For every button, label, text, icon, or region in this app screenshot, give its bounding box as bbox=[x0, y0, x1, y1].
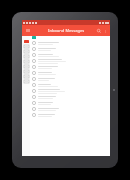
button[interactable]: Labels bbox=[22, 74, 30, 79]
staticText: Inbound Messages bbox=[48, 28, 85, 33]
button[interactable]: Spam bbox=[22, 64, 30, 69]
button[interactable] bbox=[30, 70, 110, 76]
button[interactable] bbox=[30, 94, 110, 100]
button[interactable] bbox=[30, 112, 110, 118]
button[interactable] bbox=[30, 64, 110, 70]
button[interactable]: Search bbox=[95, 27, 102, 34]
button[interactable]: Compose bbox=[32, 36, 36, 39]
button[interactable]: Starred bbox=[22, 44, 30, 49]
button[interactable] bbox=[30, 88, 110, 94]
button[interactable]: Trash bbox=[22, 69, 30, 74]
button[interactable] bbox=[30, 82, 110, 88]
button[interactable] bbox=[30, 46, 110, 52]
button[interactable]: Open navigation menu bbox=[24, 27, 31, 34]
button[interactable]: Settings bbox=[22, 79, 30, 84]
button[interactable]: Archive bbox=[22, 59, 30, 64]
button[interactable]: More options bbox=[102, 28, 108, 34]
button[interactable] bbox=[30, 58, 110, 64]
button[interactable]: Drafts bbox=[22, 54, 30, 59]
button[interactable]: Sent bbox=[22, 49, 30, 54]
button[interactable] bbox=[30, 106, 110, 112]
button[interactable] bbox=[30, 52, 110, 58]
button[interactable] bbox=[30, 40, 110, 46]
button[interactable]: Inbox bbox=[22, 39, 30, 44]
button[interactable] bbox=[30, 76, 110, 82]
button[interactable] bbox=[30, 100, 110, 106]
